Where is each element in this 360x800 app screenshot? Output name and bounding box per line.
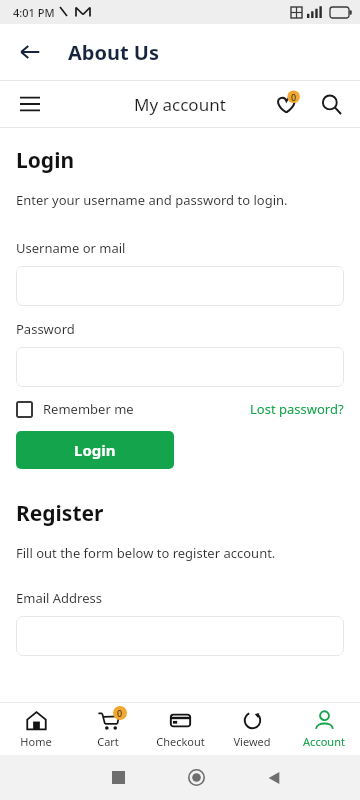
- button[interactable]: Account: [288, 703, 360, 755]
- button[interactable]: Home: [0, 703, 72, 755]
- staticText: Lost password?: [250, 400, 344, 418]
- staticText: 4:01 PM: [13, 5, 55, 20]
- button[interactable]: Back: [8, 30, 52, 74]
- button[interactable]: [16, 266, 344, 306]
- staticText: Register: [16, 499, 104, 528]
- button[interactable]: [16, 616, 344, 656]
- staticText: About Us: [68, 39, 160, 66]
- button[interactable]: Wishlist: [268, 85, 306, 123]
- staticText: Checkout: [156, 734, 205, 749]
- button[interactable]: Menu: [10, 84, 50, 124]
- button[interactable]: [16, 347, 344, 387]
- button[interactable]: Checkout: [144, 703, 216, 755]
- staticText: Password: [16, 320, 75, 338]
- button[interactable]: Lost password?: [250, 400, 344, 418]
- staticText: Login: [74, 440, 116, 460]
- button[interactable]: Home: [157, 755, 235, 800]
- staticText: Enter your username and password to logi…: [16, 191, 288, 209]
- staticText: 0: [117, 707, 123, 719]
- button[interactable]: Search: [312, 85, 350, 123]
- button[interactable]: Back: [235, 755, 313, 800]
- staticText: Viewed: [233, 734, 271, 749]
- staticText: Email Address: [16, 589, 102, 607]
- button[interactable]: Login: [16, 431, 174, 469]
- staticText: Cart: [97, 734, 119, 749]
- staticText: Home: [20, 734, 52, 749]
- button[interactable]: Remember me: [16, 400, 134, 418]
- staticText: My account: [134, 93, 226, 116]
- staticText: Username or mail: [16, 239, 126, 257]
- button[interactable]: Viewed: [216, 703, 288, 755]
- staticText: 0: [291, 91, 297, 103]
- staticText: Remember me: [43, 400, 134, 418]
- button[interactable]: Recents: [79, 755, 157, 800]
- staticText: Fill out the form below to register acco…: [16, 544, 276, 562]
- staticText: Login: [16, 146, 75, 175]
- button[interactable]: 0: [72, 703, 144, 755]
- staticText: Account: [303, 734, 345, 749]
